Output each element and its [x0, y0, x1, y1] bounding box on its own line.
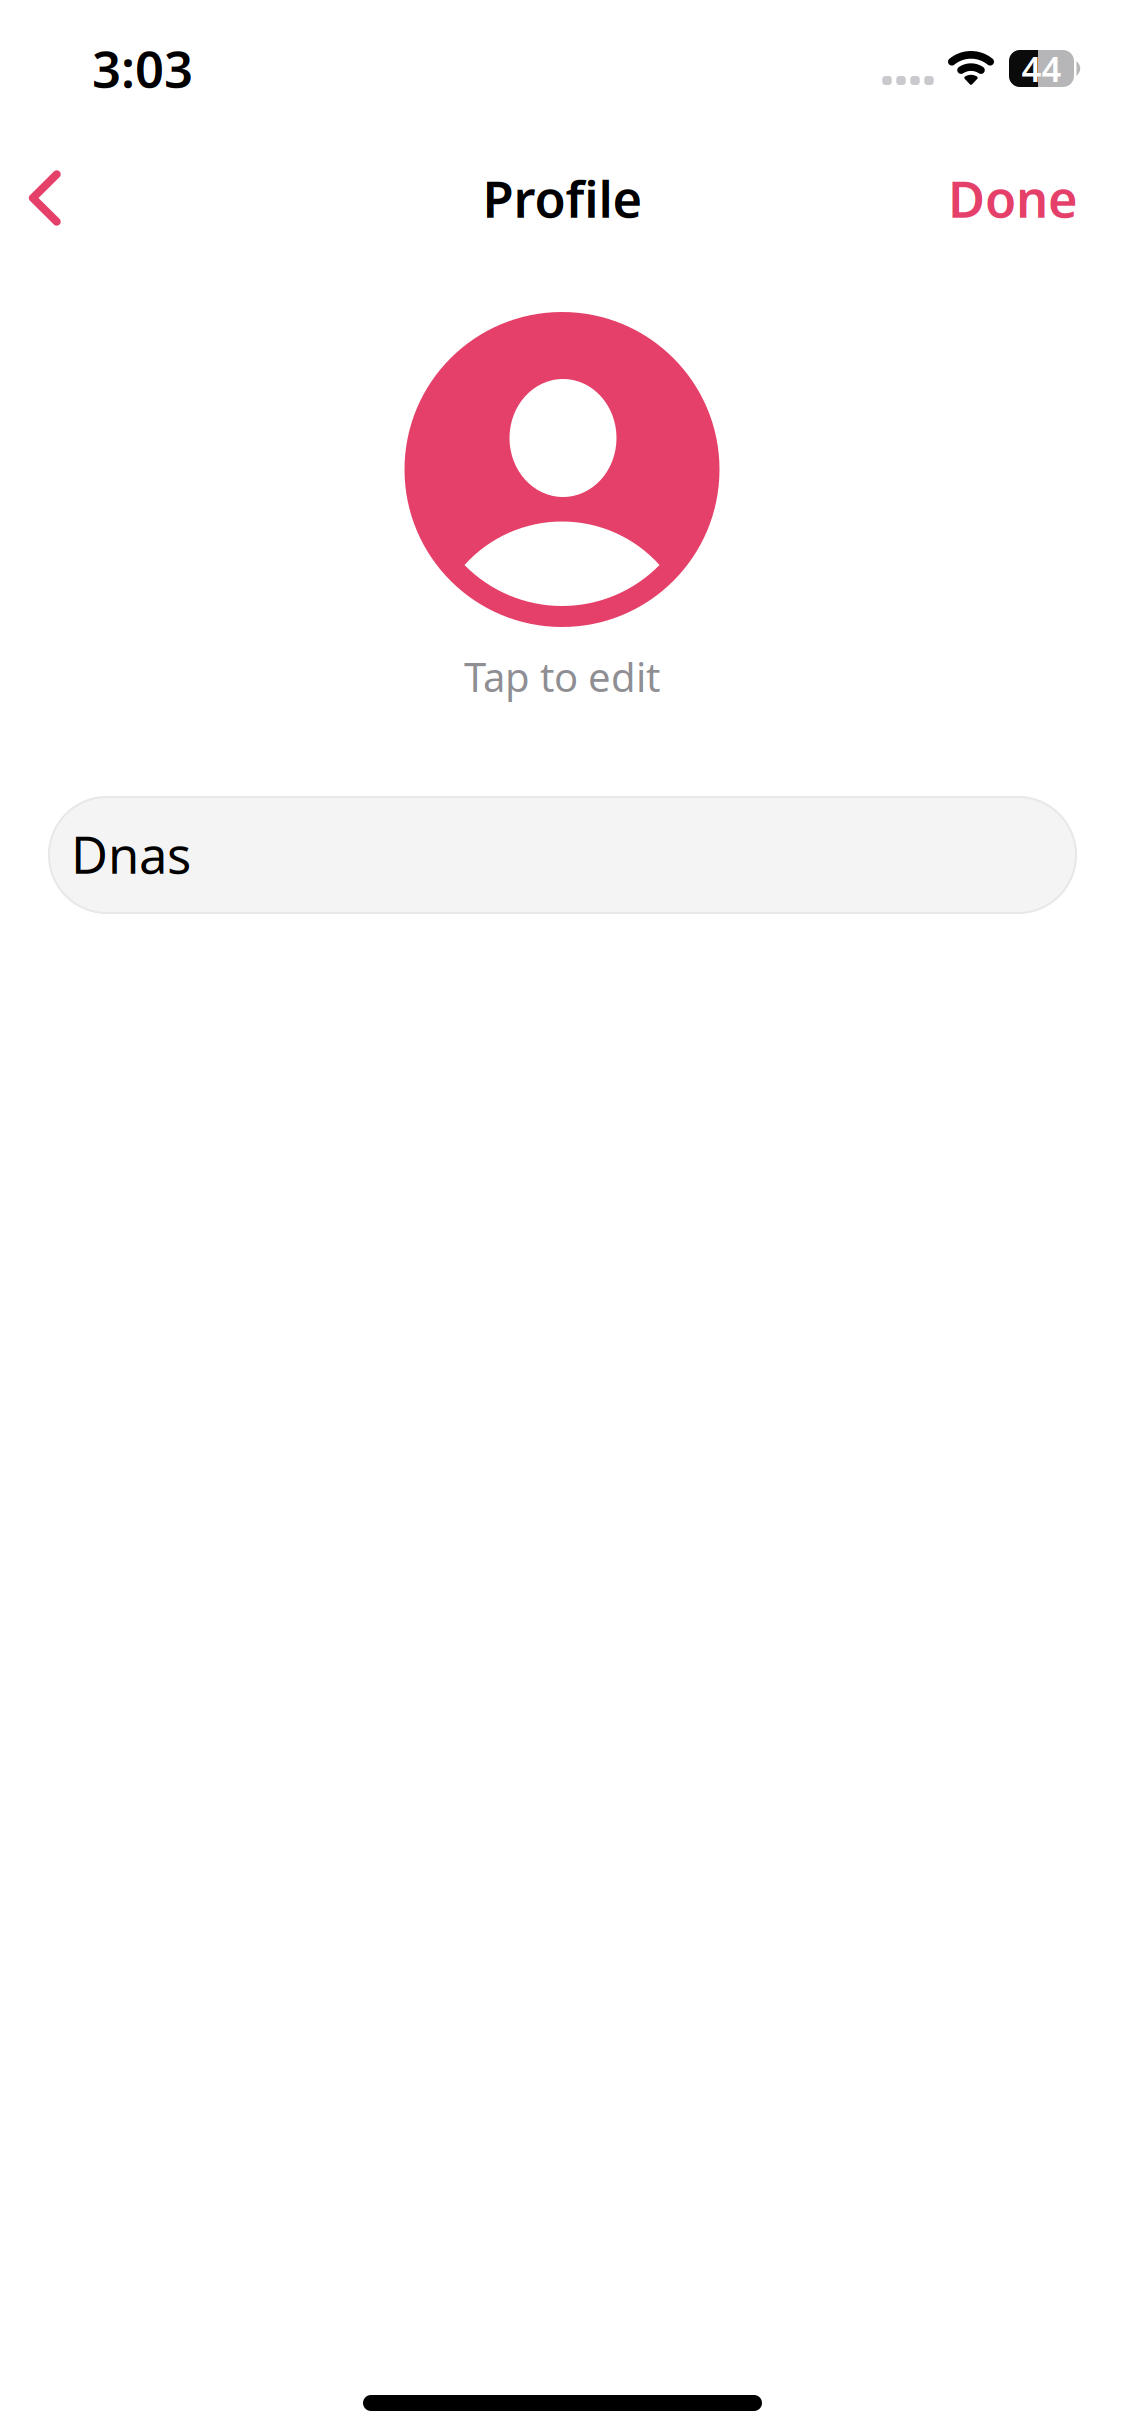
- staticText: Tap to edit: [464, 650, 660, 703]
- staticText: 44: [1021, 45, 1061, 91]
- staticText: Done: [948, 164, 1078, 232]
- staticText: Dnas: [71, 820, 191, 888]
- button[interactable]: Dnas: [48, 796, 1077, 914]
- button[interactable]: Back: [0, 150, 119, 246]
- staticText: 3:03: [92, 34, 193, 102]
- button[interactable]: Done: [929, 150, 1097, 246]
- staticText: Profile: [482, 164, 642, 232]
- button[interactable]: Tap to edit: [352, 312, 772, 703]
